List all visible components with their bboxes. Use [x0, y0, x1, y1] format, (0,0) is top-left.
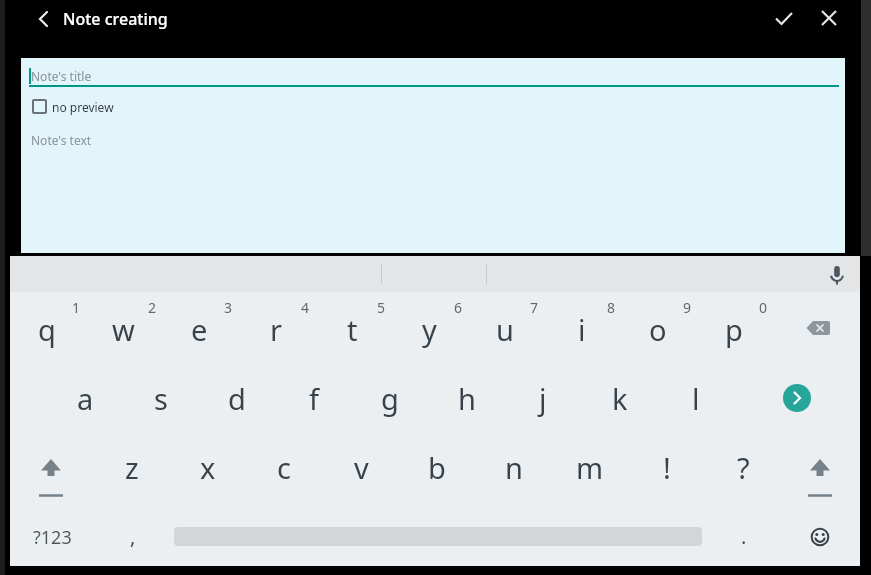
button[interactable]: h — [437, 374, 497, 422]
button[interactable]: t — [322, 305, 382, 353]
button[interactable]: s — [131, 374, 191, 422]
staticText: a — [77, 379, 94, 418]
staticText: z — [125, 448, 139, 487]
staticText: ! — [663, 448, 671, 487]
staticText: x — [200, 448, 216, 487]
staticText: 7 — [530, 298, 539, 317]
staticText: k — [612, 379, 628, 418]
button[interactable]: k — [590, 374, 650, 422]
staticText: Note creating — [63, 8, 168, 30]
button[interactable] — [38, 455, 64, 500]
staticText: d — [228, 379, 246, 418]
staticText: t — [347, 310, 358, 349]
staticText: 4 — [301, 298, 310, 317]
button[interactable]: ?123 — [20, 521, 84, 553]
staticText: w — [112, 310, 135, 349]
staticText: h — [458, 379, 476, 418]
button[interactable]: . — [732, 520, 756, 552]
button[interactable]: c — [254, 443, 314, 491]
staticText: 3 — [224, 298, 233, 317]
button[interactable]: ? — [713, 443, 773, 491]
staticText: c — [277, 448, 291, 487]
staticText: Note's text — [31, 132, 92, 148]
staticText: , — [130, 523, 136, 550]
staticText: p — [725, 310, 743, 349]
staticText: no preview — [52, 99, 114, 115]
staticText: g — [381, 379, 399, 418]
button[interactable] — [807, 455, 833, 500]
staticText: j — [539, 379, 547, 418]
button[interactable] — [825, 262, 849, 286]
staticText: s — [154, 379, 168, 418]
button[interactable] — [810, 527, 830, 547]
staticText: . — [741, 523, 747, 550]
button[interactable]: u — [475, 305, 535, 353]
staticText: b — [428, 448, 446, 487]
button[interactable]: a — [55, 374, 115, 422]
staticText: l — [692, 379, 700, 418]
staticText: i — [578, 310, 586, 349]
button[interactable]: m — [560, 443, 620, 491]
button[interactable]: j — [513, 374, 573, 422]
button[interactable] — [30, 6, 56, 32]
staticText: ? — [737, 448, 750, 487]
button[interactable]: r — [246, 305, 306, 353]
staticText: m — [576, 448, 604, 487]
staticText: 8 — [607, 298, 616, 317]
button[interactable]: e — [169, 305, 229, 353]
staticText: r — [270, 310, 282, 349]
staticText: v — [354, 448, 369, 487]
staticText: ?123 — [33, 525, 72, 550]
button[interactable]: v — [331, 443, 391, 491]
staticText: q — [38, 310, 56, 349]
button[interactable]: g — [360, 374, 420, 422]
button[interactable]: q — [17, 305, 77, 353]
button[interactable] — [815, 4, 843, 32]
button[interactable]: y — [399, 305, 459, 353]
button[interactable]: n — [484, 443, 544, 491]
button[interactable]: f — [284, 374, 344, 422]
staticText: u — [496, 310, 514, 349]
staticText: y — [422, 310, 437, 349]
staticText: e — [191, 310, 208, 349]
button[interactable]: o — [628, 305, 688, 353]
staticText: o — [649, 310, 667, 349]
button[interactable]: p — [704, 305, 764, 353]
button[interactable]: ! — [637, 443, 697, 491]
staticText: 1 — [72, 298, 81, 317]
staticText: 9 — [683, 298, 692, 317]
staticText: 5 — [377, 298, 386, 317]
staticText: 2 — [148, 298, 157, 317]
button[interactable]: z — [102, 443, 162, 491]
button[interactable]: w — [93, 305, 153, 353]
button[interactable]: , — [121, 520, 145, 552]
staticText: f — [309, 379, 319, 418]
button[interactable] — [32, 99, 47, 114]
staticText: n — [505, 448, 523, 487]
button[interactable] — [783, 384, 811, 412]
button[interactable]: i — [552, 305, 612, 353]
staticText: 6 — [454, 298, 463, 317]
button[interactable] — [770, 4, 798, 32]
staticText: Note's title — [31, 68, 92, 84]
button[interactable] — [794, 308, 842, 348]
button[interactable]: b — [407, 443, 467, 491]
button[interactable]: d — [207, 374, 267, 422]
button[interactable]: x — [178, 443, 238, 491]
staticText: 0 — [759, 298, 768, 317]
button[interactable]: l — [666, 374, 726, 422]
